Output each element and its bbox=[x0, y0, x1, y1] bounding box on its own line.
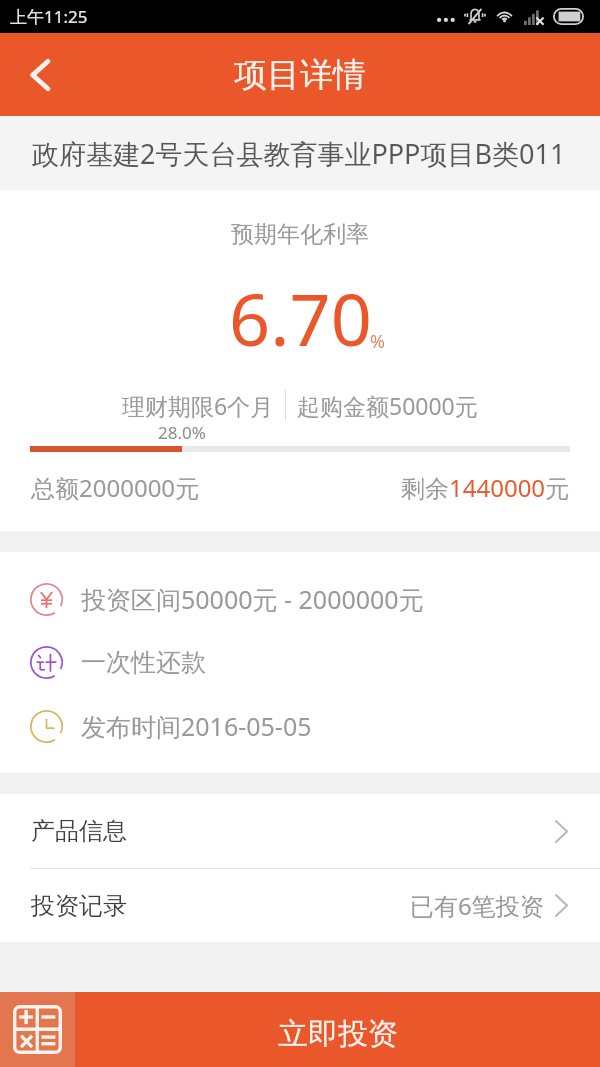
button[interactable]: 投资记录 bbox=[0, 869, 600, 942]
staticText: 28.0% bbox=[158, 421, 206, 444]
button[interactable]: Back bbox=[0, 33, 80, 116]
staticText: % bbox=[370, 329, 385, 354]
staticText: 理财期限6个月 bbox=[122, 390, 274, 421]
button[interactable]: Calculator bbox=[0, 992, 75, 1067]
staticText: 已有6笔投资 bbox=[410, 889, 544, 922]
staticText: 预期年化利率 bbox=[0, 220, 600, 249]
staticText: 立即投资 bbox=[278, 1015, 398, 1053]
staticText: 一次性还款 bbox=[81, 647, 206, 678]
staticText: 6.70 bbox=[229, 269, 372, 367]
staticText: 起购金额50000元 bbox=[297, 390, 478, 421]
staticText: 上午11:25 bbox=[10, 5, 88, 28]
staticText: 投资区间50000元 - 2000000元 bbox=[81, 582, 424, 616]
staticText: 总额2000000元 bbox=[31, 471, 200, 504]
staticText: 投资记录 bbox=[31, 891, 127, 921]
button[interactable]: 产品信息 bbox=[0, 794, 600, 868]
staticText: 项目详情 bbox=[234, 54, 366, 96]
staticText: 产品信息 bbox=[31, 816, 127, 846]
staticText: 发布时间2016-05-05 bbox=[81, 709, 312, 743]
staticText: 政府基建2号天台县教育事业PPP项目B类011 bbox=[32, 135, 566, 172]
staticText: 剩余1440000元 bbox=[401, 471, 570, 504]
button[interactable]: 立即投资 bbox=[75, 992, 600, 1067]
